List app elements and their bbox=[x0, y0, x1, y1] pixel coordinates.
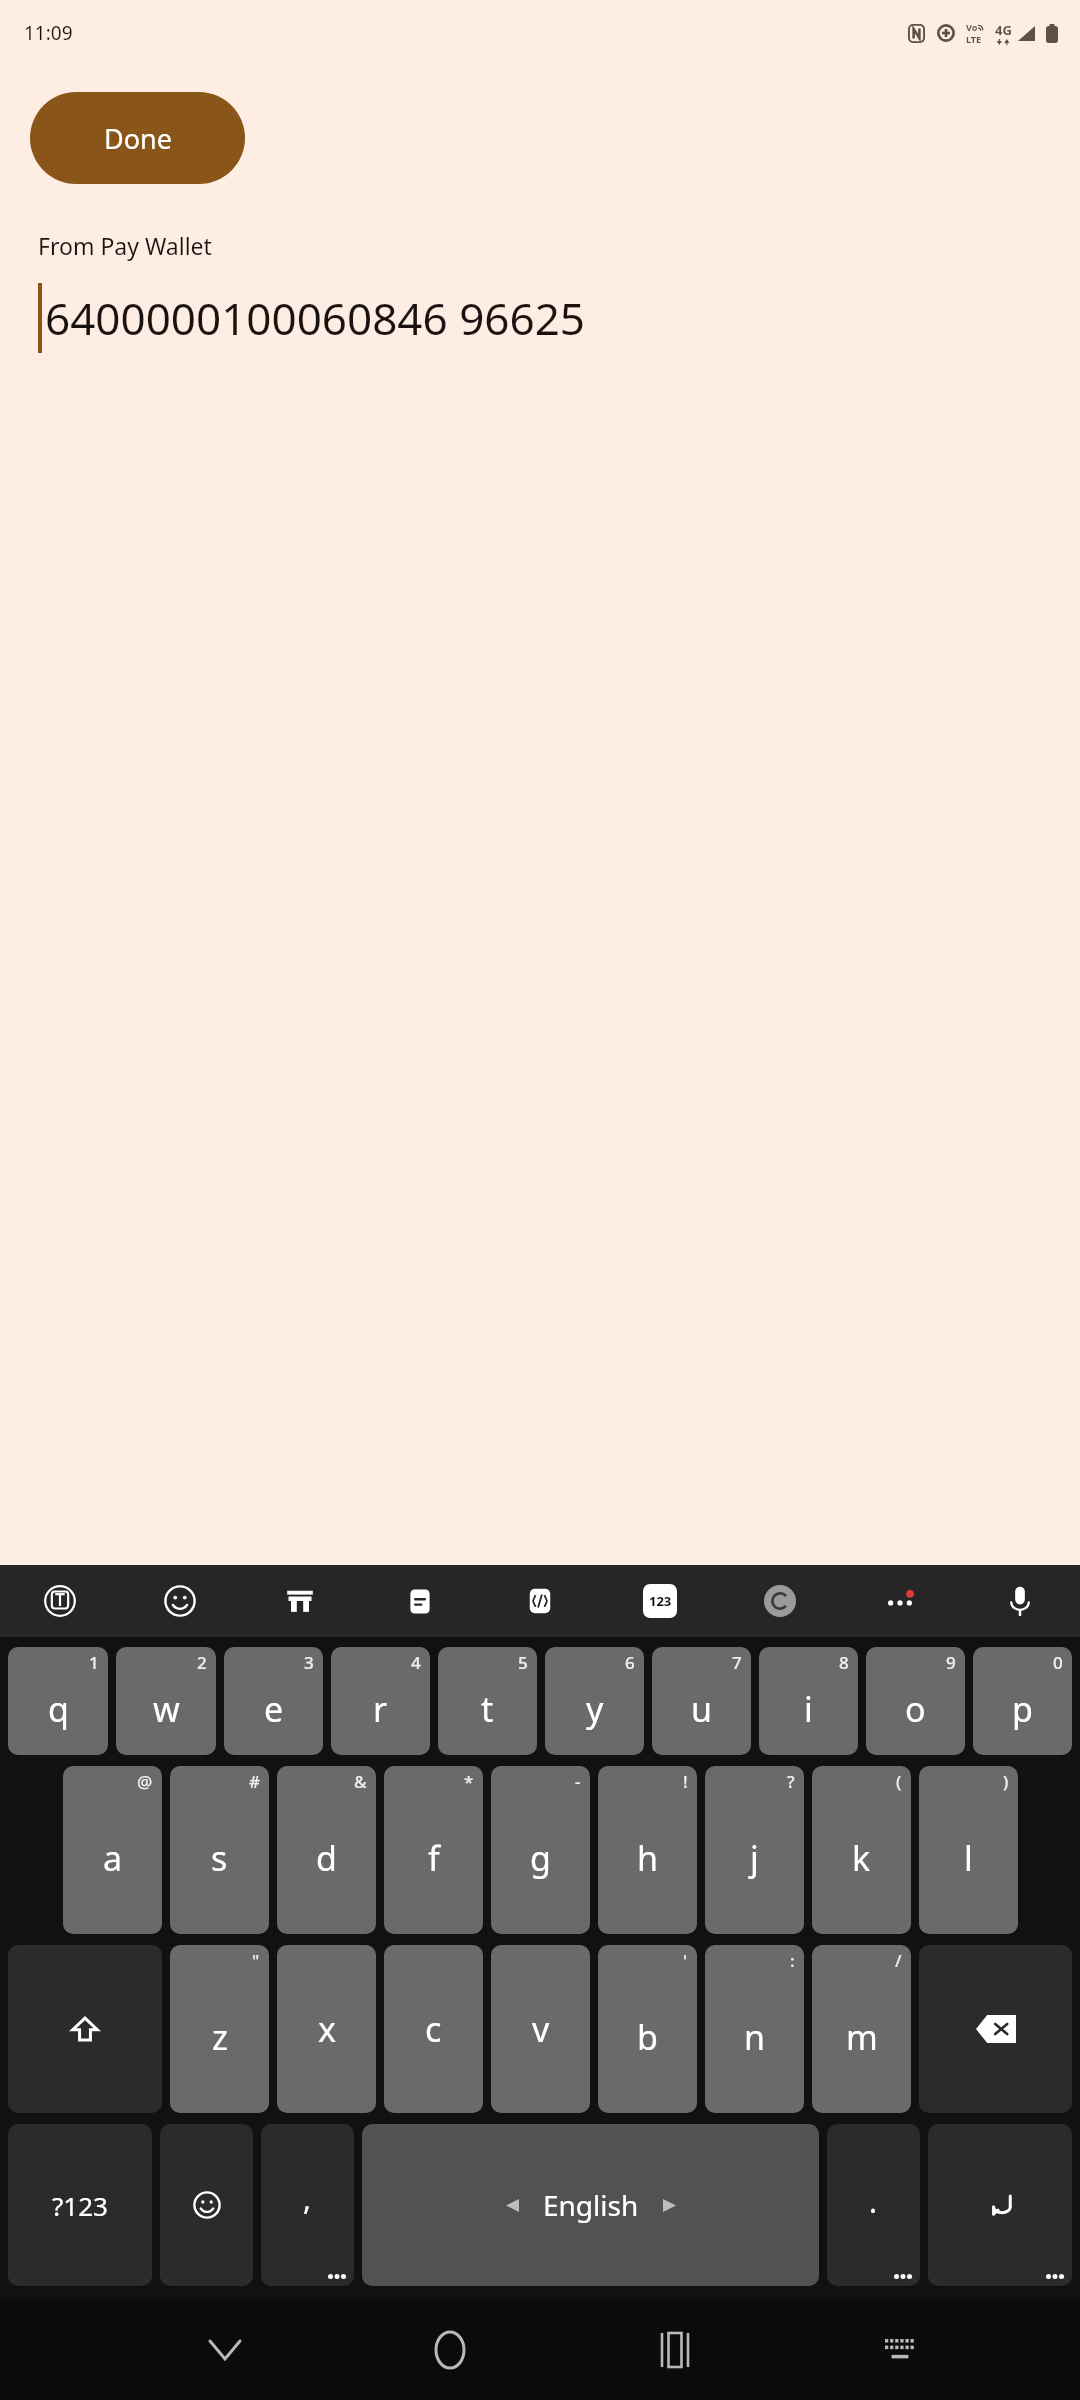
staticText: * bbox=[464, 1770, 474, 1793]
staticText: ( bbox=[896, 1770, 902, 1793]
button[interactable]: 0 bbox=[973, 1647, 1072, 1755]
button[interactable]: 6 bbox=[545, 1647, 644, 1755]
button[interactable]: Recent apps bbox=[562, 2300, 787, 2400]
staticText: ! bbox=[683, 1770, 688, 1793]
staticText: : bbox=[790, 1949, 795, 1972]
button[interactable]: - bbox=[491, 1766, 590, 1934]
staticText: 123 bbox=[649, 1592, 672, 1610]
button[interactable]: Shift bbox=[8, 1945, 162, 2113]
button[interactable]: English bbox=[362, 2124, 819, 2286]
staticText: a bbox=[103, 1835, 123, 1881]
staticText: l bbox=[964, 1835, 973, 1881]
button[interactable]: " bbox=[170, 1945, 269, 2113]
button[interactable]: 5 bbox=[438, 1647, 537, 1755]
staticText: v bbox=[532, 2006, 550, 2052]
staticText: 6 bbox=[625, 1651, 635, 1674]
staticText: x bbox=[318, 2006, 336, 2052]
staticText: ) bbox=[1003, 1770, 1009, 1793]
button[interactable]: Numbers bbox=[600, 1565, 720, 1637]
staticText: o bbox=[905, 1686, 926, 1732]
staticText: 11:09 bbox=[24, 20, 73, 46]
button[interactable]: 1 bbox=[8, 1647, 108, 1755]
staticText: p bbox=[1012, 1686, 1033, 1732]
button[interactable]: ! bbox=[598, 1766, 697, 1934]
button[interactable]: : bbox=[705, 1945, 804, 2113]
staticText: s bbox=[211, 1835, 228, 1881]
button[interactable]: Translate bbox=[0, 1565, 120, 1637]
button[interactable]: 8 bbox=[759, 1647, 858, 1755]
button[interactable]: Emoji bbox=[120, 1565, 240, 1637]
staticText: 4G bbox=[995, 21, 1012, 39]
button[interactable]: ) bbox=[919, 1766, 1018, 1934]
button[interactable]: @ bbox=[63, 1766, 162, 1934]
button[interactable]: Hide keyboard bbox=[112, 2300, 337, 2400]
button[interactable]: v bbox=[491, 1945, 590, 2113]
button[interactable]: & bbox=[277, 1766, 376, 1934]
staticText: 8 bbox=[839, 1651, 849, 1674]
button[interactable]: Text editing bbox=[480, 1565, 600, 1637]
button[interactable]: 2 bbox=[116, 1647, 216, 1755]
staticText: , bbox=[303, 2178, 312, 2219]
staticText: 9 bbox=[946, 1651, 956, 1674]
staticText: y bbox=[586, 1686, 604, 1732]
staticText: ? bbox=[787, 1770, 795, 1793]
staticText: Done bbox=[104, 120, 172, 157]
button[interactable]: 7 bbox=[652, 1647, 751, 1755]
staticText: b bbox=[637, 2014, 658, 2060]
button[interactable]: * bbox=[384, 1766, 483, 1934]
button[interactable]: 9 bbox=[866, 1647, 965, 1755]
staticText: & bbox=[354, 1770, 367, 1793]
staticText: / bbox=[895, 1949, 902, 1972]
button[interactable]: ? bbox=[705, 1766, 804, 1934]
button[interactable]: More options bbox=[840, 1565, 960, 1637]
staticText: English bbox=[543, 2186, 639, 2224]
button[interactable]: Done bbox=[30, 92, 245, 184]
staticText: 6400000100060846 96625 bbox=[45, 288, 585, 348]
staticText: " bbox=[252, 1949, 260, 1972]
staticText: q bbox=[48, 1686, 69, 1732]
staticText: z bbox=[212, 2014, 228, 2060]
staticText: d bbox=[316, 1835, 337, 1881]
button[interactable]: Enter bbox=[928, 2124, 1072, 2286]
staticText: - bbox=[575, 1770, 581, 1793]
button[interactable]: . bbox=[827, 2124, 920, 2286]
staticText: ' bbox=[683, 1949, 688, 1972]
staticText: . bbox=[869, 2181, 878, 2222]
button[interactable]: c bbox=[384, 1945, 483, 2113]
button[interactable]: 3 bbox=[224, 1647, 323, 1755]
staticText: i bbox=[804, 1686, 813, 1732]
button[interactable]: / bbox=[812, 1945, 911, 2113]
button[interactable]: Voice input bbox=[960, 1565, 1080, 1637]
button[interactable]: GIF bbox=[720, 1565, 840, 1637]
staticText: t bbox=[481, 1686, 494, 1732]
staticText: 4 bbox=[411, 1651, 421, 1674]
staticText: ?123 bbox=[52, 2188, 108, 2223]
staticText: h bbox=[637, 1835, 659, 1881]
button[interactable]: Clipboard bbox=[360, 1565, 480, 1637]
staticText: k bbox=[852, 1835, 871, 1881]
staticText: e bbox=[264, 1686, 284, 1732]
button[interactable]: Backspace bbox=[919, 1945, 1072, 2113]
button[interactable]: Emoji bbox=[160, 2124, 253, 2286]
button[interactable]: Store bbox=[240, 1565, 360, 1637]
staticText: w bbox=[153, 1686, 180, 1732]
button[interactable]: Switch keyboard bbox=[787, 2300, 1012, 2400]
staticText: 1 bbox=[89, 1651, 99, 1674]
button[interactable]: # bbox=[170, 1766, 269, 1934]
button[interactable]: 4 bbox=[331, 1647, 430, 1755]
staticText: g bbox=[530, 1835, 551, 1881]
staticText: LTE bbox=[966, 33, 982, 45]
button[interactable]: ( bbox=[812, 1766, 911, 1934]
staticText: n bbox=[744, 2014, 766, 2060]
button[interactable]: , bbox=[261, 2124, 354, 2286]
staticText: # bbox=[249, 1770, 260, 1793]
button[interactable]: ' bbox=[598, 1945, 697, 2113]
staticText: 0 bbox=[1053, 1651, 1063, 1674]
button[interactable]: ?123 bbox=[8, 2124, 152, 2286]
staticText: Vo bbox=[966, 21, 978, 33]
staticText: @ bbox=[137, 1770, 153, 1793]
button[interactable]: x bbox=[277, 1945, 376, 2113]
button[interactable]: Home bbox=[337, 2300, 562, 2400]
staticText: 7 bbox=[732, 1651, 742, 1674]
staticText: c bbox=[425, 2006, 442, 2052]
